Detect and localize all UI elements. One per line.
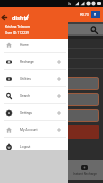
staticText: Instant Recharge [73,172,97,176]
button[interactable] [2,93,99,106]
staticText: Utilities [20,77,31,81]
button[interactable]: Recharge [0,53,68,70]
button[interactable]: Wallet balance [91,11,100,18]
button[interactable]: Home [0,36,68,53]
staticText: My Account [20,128,38,132]
button[interactable]: Settings [0,104,68,121]
staticText: User ID: 112239 [5,31,29,35]
staticText: ₹0.73 [80,13,89,17]
staticText: Krishna Telecom [5,25,31,29]
button[interactable]: Search [0,87,68,104]
button[interactable]: Back [0,13,9,22]
staticText: dishtv [12,14,29,21]
staticText: Search [20,94,31,98]
staticText: 0.00Kb/s [58,2,71,6]
staticText: Recharge [20,60,34,64]
staticText: Logout [20,145,31,149]
button[interactable] [2,109,99,122]
staticText: Home [20,43,29,47]
button[interactable]: RESET [2,125,99,139]
button[interactable]: Instant Recharge [66,160,103,180]
button[interactable]: Search [90,26,98,34]
button[interactable]: Utilities [0,70,68,87]
staticText: ₹ [94,12,97,17]
button[interactable]: Logout [0,138,68,155]
staticText: Settings [20,111,33,115]
button[interactable] [2,77,99,90]
button[interactable]: My Account [0,121,68,138]
staticText: RESET [7,130,18,134]
